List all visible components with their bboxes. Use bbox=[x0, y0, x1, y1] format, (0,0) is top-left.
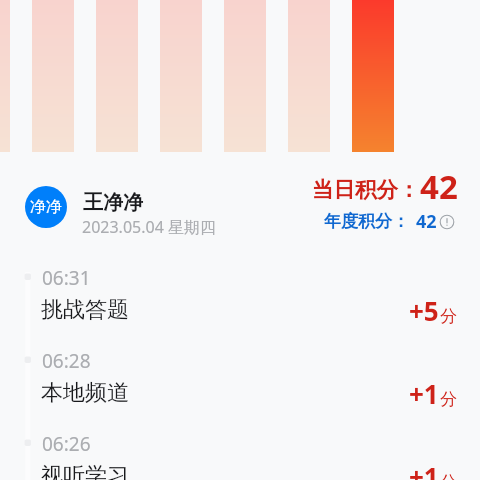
button[interactable]: 06:28 bbox=[0, 335, 480, 418]
staticText: 净净 bbox=[30, 197, 62, 217]
staticText: +1 bbox=[409, 459, 439, 480]
staticText: +5 bbox=[409, 293, 439, 328]
staticText: 当日积分： bbox=[312, 176, 420, 203]
button[interactable]: 06:26 bbox=[0, 418, 480, 480]
button[interactable]: 每周积分柱状图 bbox=[0, 0, 480, 152]
button[interactable]: 06:31 bbox=[0, 252, 480, 335]
staticText: +1 bbox=[409, 376, 439, 411]
staticText: 分 bbox=[440, 306, 457, 327]
staticText: 06:26 bbox=[42, 431, 91, 457]
staticText: 分 bbox=[440, 472, 457, 480]
staticText: 挑战答题 bbox=[41, 296, 129, 324]
button[interactable]: 积分规则说明 bbox=[439, 214, 455, 230]
staticText: 本地频道 bbox=[41, 379, 129, 407]
button[interactable]: 当日积分： bbox=[312, 164, 458, 209]
staticText: 42 bbox=[420, 164, 458, 209]
staticText: 分 bbox=[440, 389, 457, 410]
staticText: 2023.05.04 星期四 bbox=[82, 216, 216, 238]
button[interactable]: 净净 bbox=[25, 179, 255, 235]
staticText: 年度积分： bbox=[324, 211, 409, 232]
staticText: 王净净 bbox=[83, 190, 143, 215]
button[interactable]: 年度积分： bbox=[324, 209, 455, 234]
staticText: 06:28 bbox=[42, 348, 91, 374]
staticText: 42 bbox=[416, 209, 437, 234]
staticText: 视听学习 bbox=[41, 462, 129, 480]
staticText: 06:31 bbox=[42, 265, 91, 291]
